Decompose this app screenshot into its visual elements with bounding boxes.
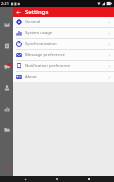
button[interactable]: Back <box>18 176 32 182</box>
button[interactable]: System usage <box>13 28 114 38</box>
button[interactable]: Home <box>50 176 64 182</box>
button[interactable]: Recents <box>82 176 96 182</box>
button[interactable]: Alerts <box>5 165 9 169</box>
staticText: Synchronization <box>25 41 57 47</box>
button[interactable]: Nav item 4 <box>0 77 13 98</box>
staticText: Message preference <box>25 52 65 58</box>
staticText: Notification preference <box>25 63 71 69</box>
staticText: About <box>25 74 37 80</box>
button[interactable]: Back <box>13 7 23 17</box>
staticText: Settings <box>25 8 49 16</box>
button[interactable]: Notification preference <box>13 61 114 71</box>
button[interactable]: Nav item 2 <box>0 35 13 56</box>
button[interactable]: General <box>13 17 114 27</box>
staticText: System usage <box>25 30 53 36</box>
button[interactable]: Nav item 3 <box>0 56 13 77</box>
staticText: General <box>25 19 41 25</box>
button[interactable]: Synchronization <box>13 39 114 49</box>
staticText: 2:21 <box>1 1 9 6</box>
button[interactable]: About <box>13 72 114 82</box>
button[interactable]: Message preference <box>13 50 114 60</box>
button[interactable]: Nav item 5 <box>0 98 13 119</box>
button[interactable]: Nav item 1 <box>0 14 13 35</box>
button[interactable]: Nav item 6 <box>0 119 13 140</box>
